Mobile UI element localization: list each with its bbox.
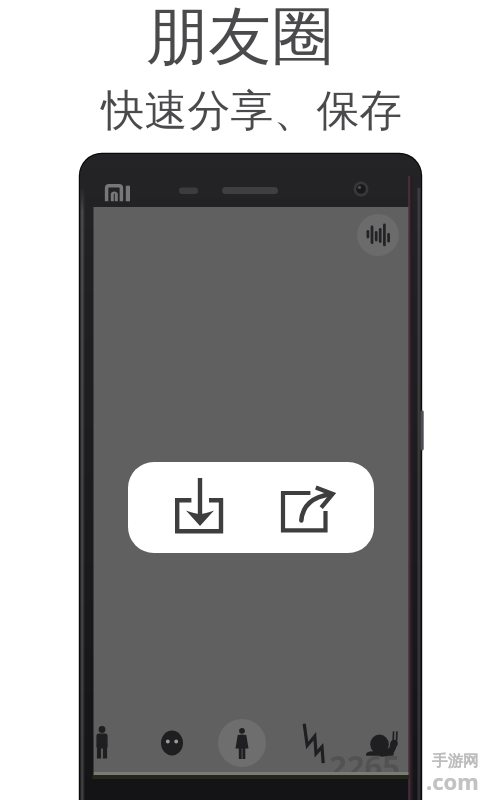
button[interactable]: Voice recording <box>357 214 399 256</box>
button[interactable]: Face <box>148 719 196 767</box>
button[interactable]: Fast <box>288 719 336 767</box>
button[interactable]: Share <box>264 472 364 544</box>
staticText: 朋友圈 <box>0 0 480 797</box>
staticText: 2265 <box>329 745 480 800</box>
button[interactable]: Slow <box>358 719 406 767</box>
button[interactable]: Male <box>84 719 132 767</box>
staticText: 手游网 <box>432 751 480 800</box>
button[interactable]: Save <box>150 472 250 544</box>
button[interactable]: Female <box>218 719 266 767</box>
staticText: 快速分享、保存 <box>12 84 480 800</box>
staticText: .com <box>426 766 480 800</box>
